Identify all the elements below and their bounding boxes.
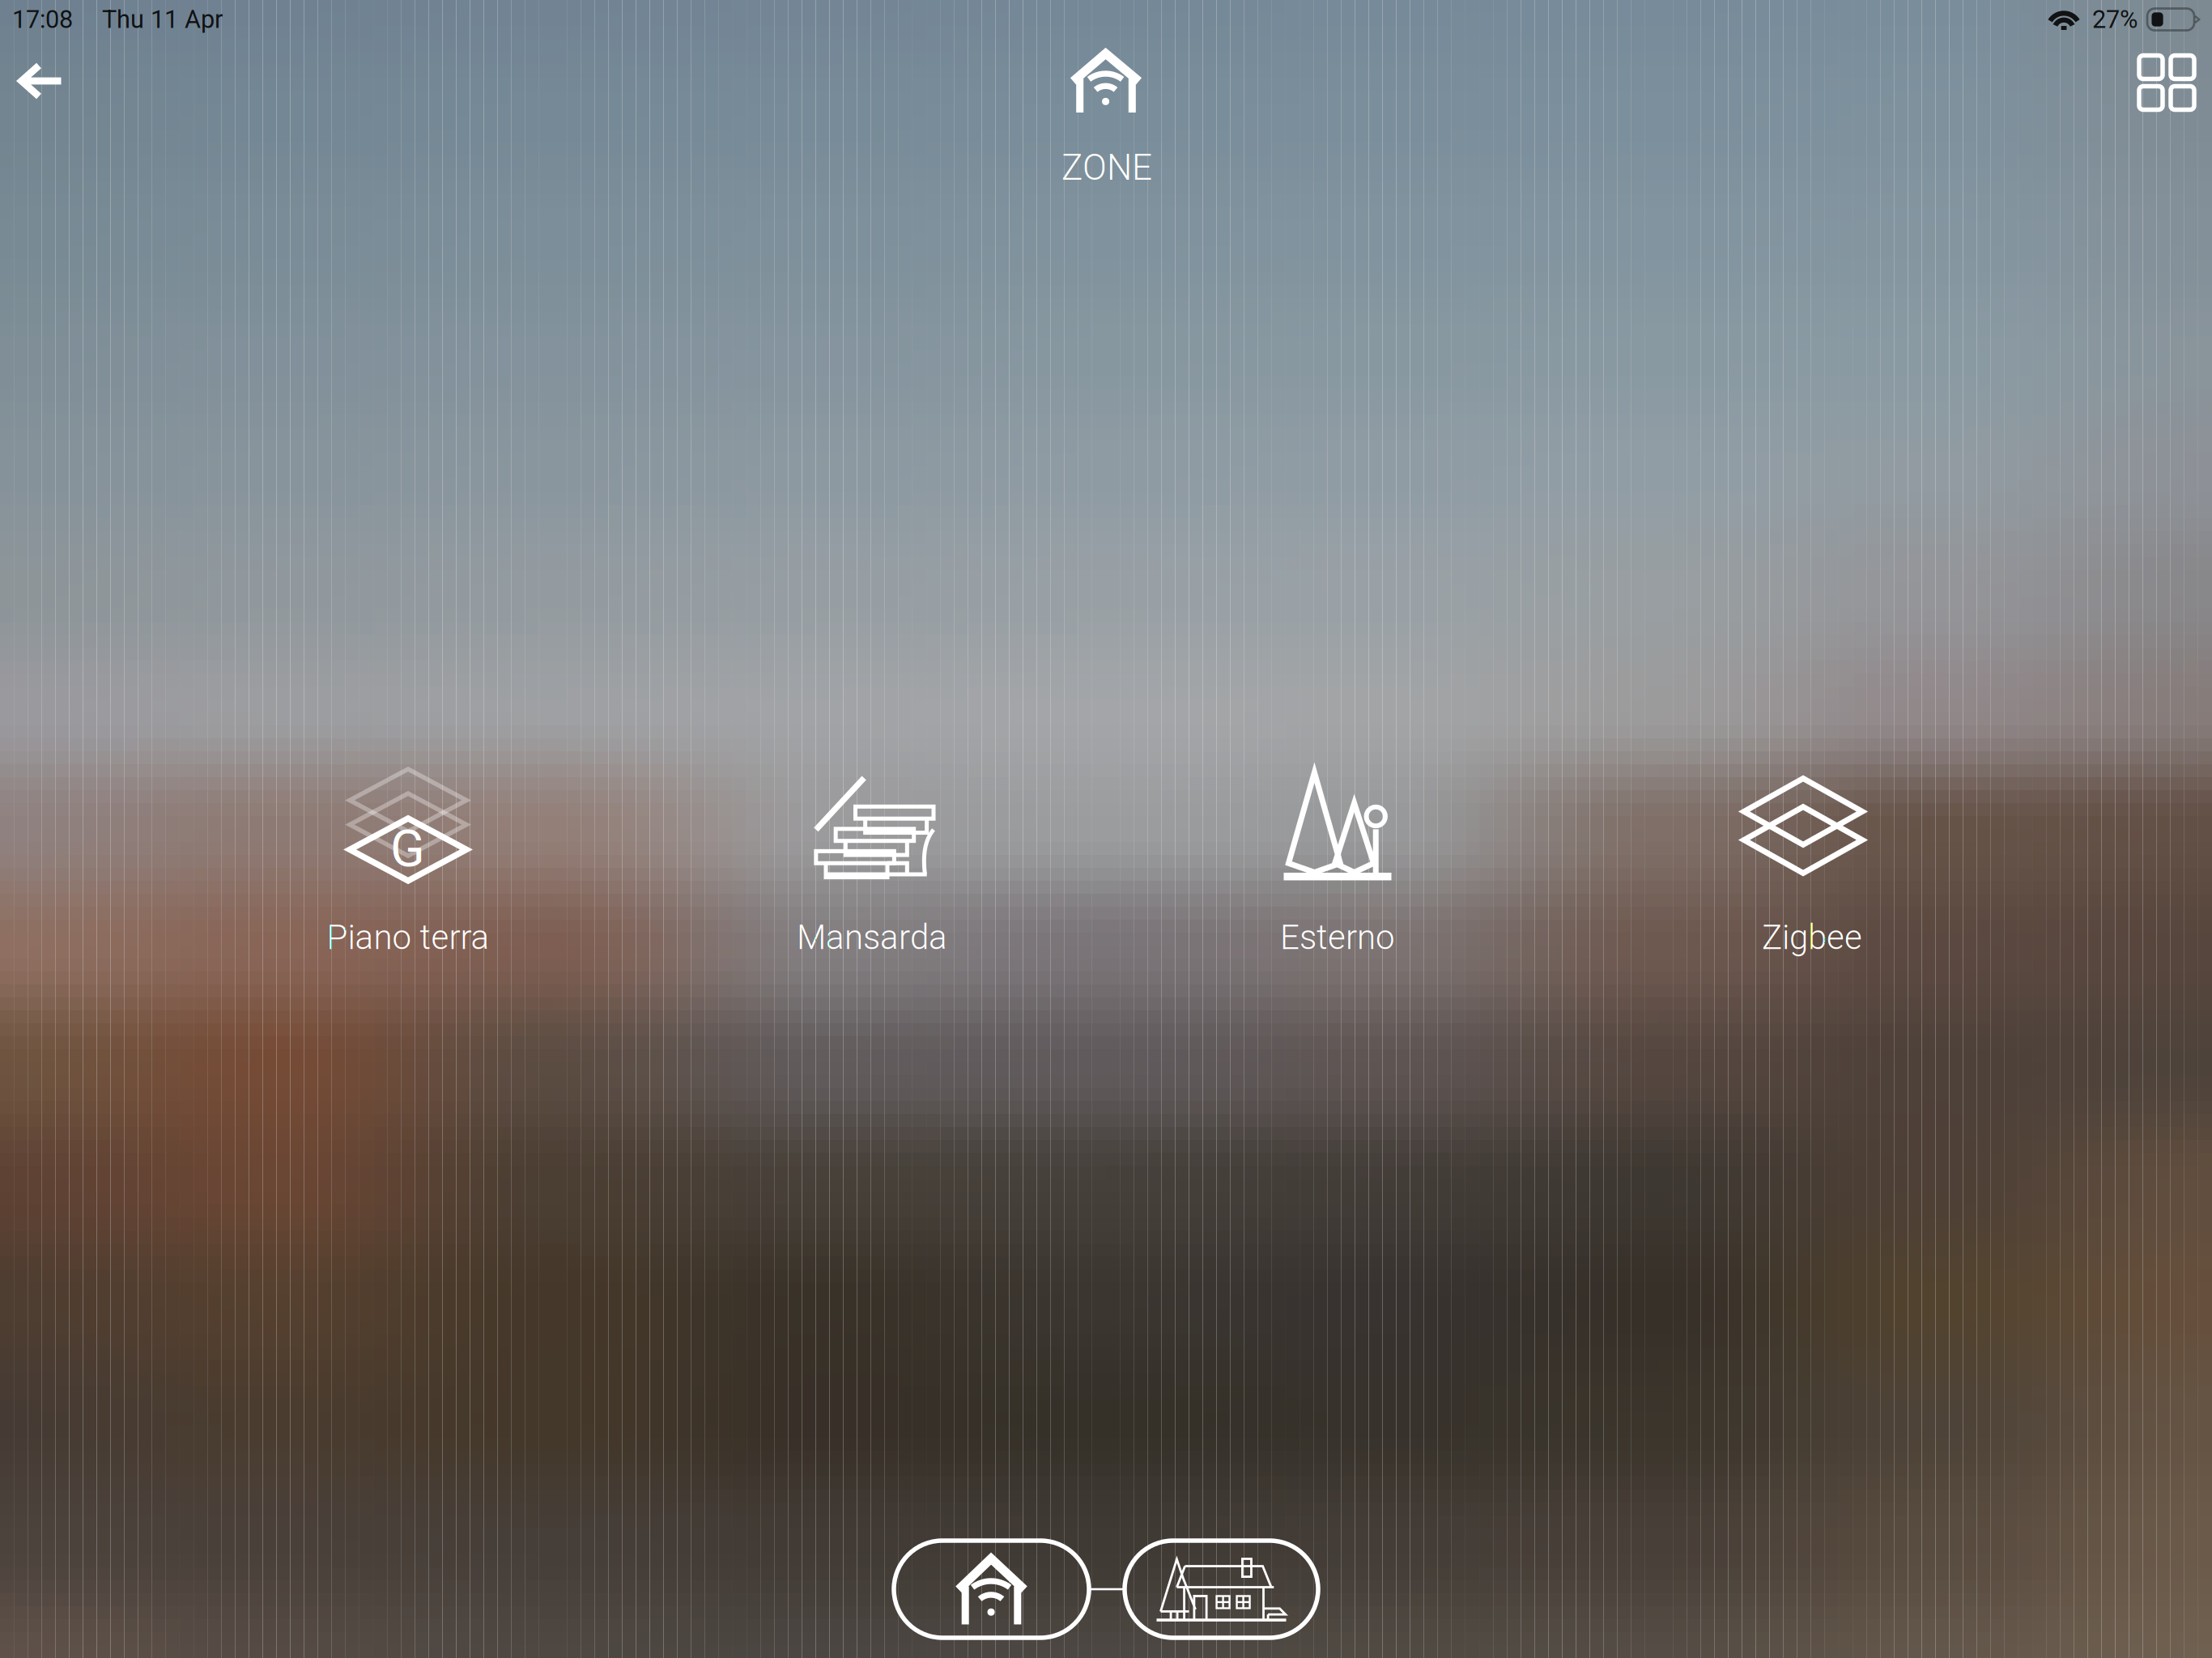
button[interactable]: Esterno <box>1155 735 1520 978</box>
button[interactable]: Home <box>894 1541 1089 1638</box>
staticText: Piano terra <box>327 918 489 957</box>
button[interactable]: House <box>1125 1541 1318 1638</box>
staticText: Esterno <box>1280 918 1395 957</box>
staticText: Mansarda <box>797 918 947 957</box>
button[interactable]: Back <box>0 24 98 138</box>
staticText: ZONE <box>1061 147 1152 188</box>
staticText: Zigbee <box>1762 918 1862 957</box>
staticText: G <box>390 819 425 879</box>
staticText: 27% <box>2092 5 2138 34</box>
button[interactable]: Zigbee <box>1630 735 1994 978</box>
button[interactable]: Grid view <box>2110 26 2212 139</box>
staticText: Thu 11 Apr <box>102 5 223 34</box>
button[interactable]: G <box>226 735 590 978</box>
staticText: 17:08 <box>12 5 73 34</box>
button[interactable]: Mansarda <box>690 735 1054 978</box>
